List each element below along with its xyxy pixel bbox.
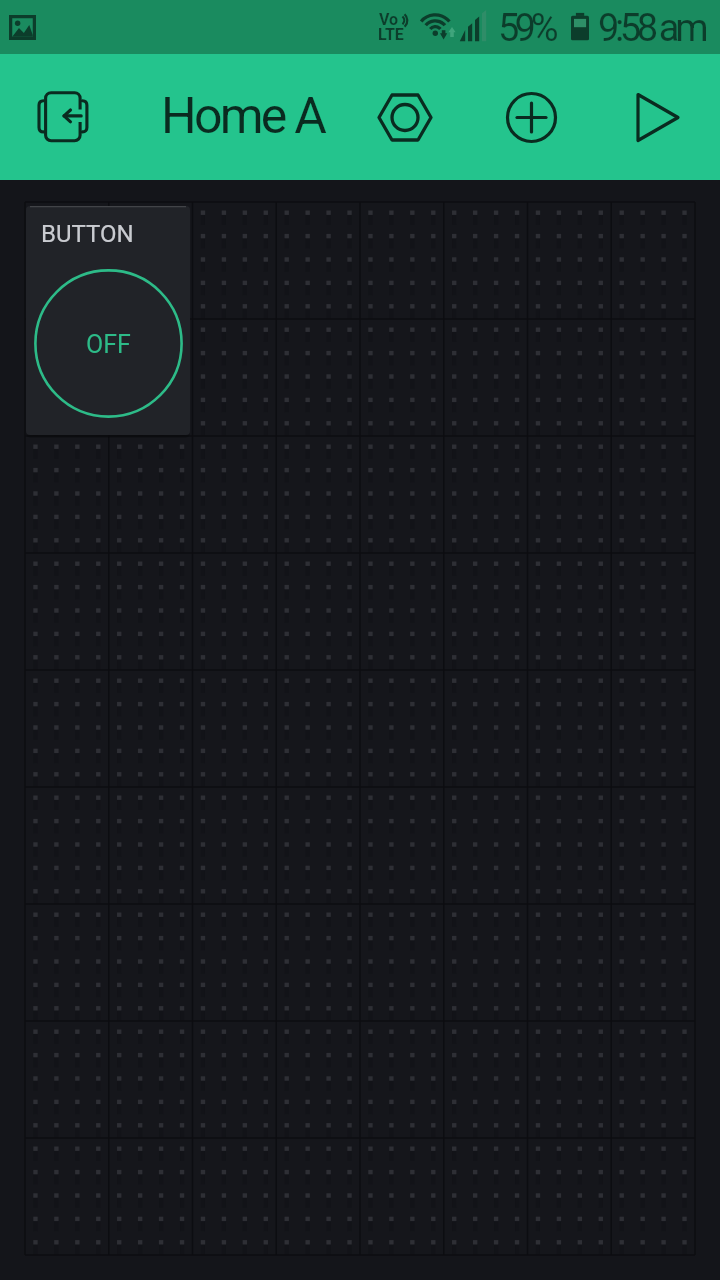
- staticText: Vo: [379, 10, 399, 29]
- staticText: OFF: [86, 330, 131, 359]
- button[interactable]: Settings: [375, 82, 435, 152]
- button[interactable]: Add: [501, 82, 561, 152]
- button[interactable]: Exit: [30, 84, 96, 150]
- staticText: 9:58 am: [598, 6, 705, 51]
- staticText: BUTTON: [41, 220, 134, 248]
- staticText: LTE: [378, 25, 404, 44]
- staticText: Home A: [161, 87, 325, 146]
- button[interactable]: BUTTON: [26, 206, 190, 435]
- button[interactable]: Play: [628, 82, 688, 152]
- staticText: 59%: [498, 6, 554, 51]
